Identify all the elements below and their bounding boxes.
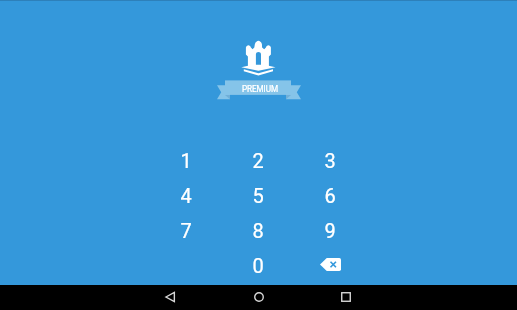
button[interactable]: 3 [294, 143, 366, 178]
staticText: 7 [180, 219, 192, 242]
button[interactable]: 1 [150, 143, 222, 178]
button[interactable]: 6 [294, 178, 366, 213]
button[interactable]: 2 [222, 143, 294, 178]
staticText: 5 [252, 184, 264, 207]
button[interactable]: Back [159, 285, 183, 309]
staticText: 0 [252, 254, 264, 277]
staticText: 6 [324, 184, 336, 207]
staticText: 1 [180, 149, 192, 172]
button[interactable]: 0 [222, 248, 294, 283]
button[interactable]: 7 [150, 213, 222, 248]
staticText: 3 [324, 149, 336, 172]
staticText: 2 [252, 149, 264, 172]
button[interactable]: 8 [222, 213, 294, 248]
button[interactable]: 9 [294, 213, 366, 248]
other: Backspace [320, 258, 341, 271]
staticText: PREMIUM [242, 84, 278, 94]
button[interactable]: 5 [222, 178, 294, 213]
button[interactable]: Backspace [294, 248, 366, 283]
staticText: 9 [324, 219, 336, 242]
staticText: 4 [180, 184, 192, 207]
button[interactable]: Recents [334, 285, 358, 309]
button[interactable]: 4 [150, 178, 222, 213]
button[interactable]: Home [247, 285, 271, 309]
staticText: 8 [252, 219, 264, 242]
